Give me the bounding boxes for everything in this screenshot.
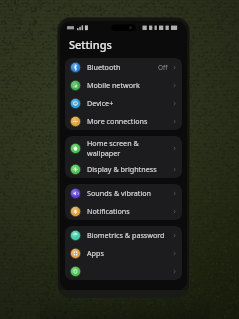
- button[interactable]: More connections: [65, 112, 182, 130]
- button[interactable]: Bluetooth: [65, 58, 182, 76]
- button[interactable]: Apps: [65, 244, 182, 262]
- staticText: Display & brightness: [87, 164, 157, 174]
- staticText: Bluetooth: [87, 62, 121, 72]
- staticText: More connections: [87, 116, 148, 126]
- staticText: Apps: [87, 248, 104, 258]
- staticText: Off: [158, 63, 168, 72]
- staticText: Device+: [87, 98, 114, 108]
- staticText: Settings: [69, 37, 112, 52]
- button[interactable]: Device+: [65, 94, 182, 112]
- staticText: Notifications: [87, 206, 130, 216]
- button[interactable]: Display & brightness: [65, 160, 182, 178]
- button[interactable]: [65, 262, 182, 280]
- button[interactable]: Home screen &: [65, 136, 182, 160]
- staticText: Biometrics & password: [87, 230, 165, 240]
- button[interactable]: Biometrics & password: [65, 226, 182, 244]
- button[interactable]: Sounds & vibration: [65, 184, 182, 202]
- button[interactable]: Notifications: [65, 202, 182, 220]
- staticText: Mobile network: [87, 80, 140, 90]
- staticText: wallpaper: [87, 148, 121, 158]
- button[interactable]: Mobile network: [65, 76, 182, 94]
- staticText: Sounds & vibration: [87, 188, 152, 198]
- staticText: Home screen &: [87, 138, 139, 148]
